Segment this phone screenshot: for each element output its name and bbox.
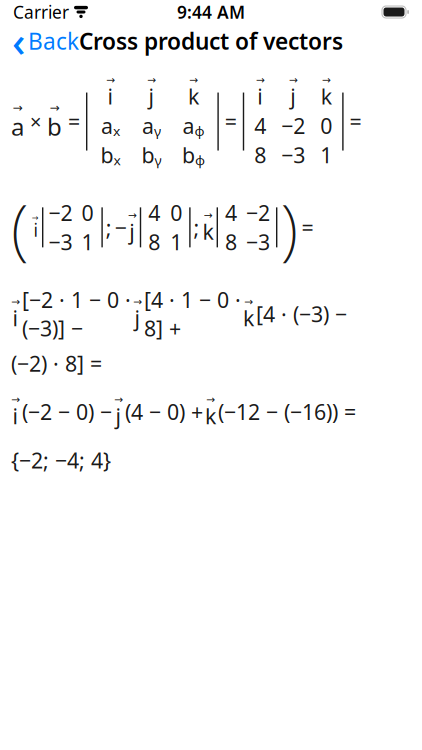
staticText: −2: [281, 111, 305, 140]
staticText: =: [301, 213, 313, 241]
staticText: [−2 · 1 − 0 · (−3)] −: [22, 286, 131, 342]
staticText: →: [322, 74, 331, 86]
staticText: (−2 − 0) −: [22, 398, 112, 426]
staticText: Carrier: [13, 0, 69, 23]
staticText: 9:44 AM: [177, 0, 245, 23]
staticText: i: [12, 304, 18, 332]
staticText: 1: [320, 141, 332, 169]
staticText: k: [203, 217, 214, 246]
staticText: →: [244, 296, 253, 308]
staticText: ‹: [12, 14, 25, 68]
staticText: −2: [246, 198, 270, 227]
staticText: Cross product of vectors: [79, 26, 343, 56]
staticText: →: [11, 296, 20, 308]
staticText: k: [243, 304, 254, 332]
staticText: 0: [170, 198, 182, 227]
staticText: aₓ: [101, 111, 120, 140]
staticText: 1: [81, 228, 93, 256]
staticText: (: [11, 183, 29, 272]
staticText: →: [12, 101, 22, 114]
staticText: j: [148, 82, 154, 110]
button[interactable]: ‹: [0, 11, 89, 71]
staticText: j: [134, 304, 140, 332]
staticText: →: [11, 394, 20, 406]
staticText: a: [11, 110, 24, 142]
staticText: bₓ: [100, 141, 120, 169]
staticText: (−12 − (−16)) =: [218, 398, 356, 426]
staticText: [4 · (−3) −: [256, 300, 347, 328]
staticText: 4: [225, 198, 237, 227]
staticText: j: [115, 402, 121, 430]
staticText: ×: [30, 108, 41, 135]
staticText: →: [147, 74, 156, 86]
staticText: =: [350, 107, 362, 136]
staticText: →: [289, 74, 298, 86]
staticText: =: [68, 107, 80, 136]
staticText: ): [280, 183, 298, 272]
staticText: −3: [281, 141, 305, 169]
staticText: =: [225, 107, 237, 136]
staticText: j: [129, 217, 135, 246]
staticText: k: [188, 82, 199, 110]
staticText: →: [106, 74, 115, 86]
staticText: k: [205, 402, 216, 430]
staticText: j: [290, 82, 296, 110]
staticText: ;: [106, 213, 112, 241]
staticText: −2: [48, 198, 72, 227]
staticText: {−2; −4; 4}: [11, 446, 111, 474]
staticText: →: [189, 74, 198, 86]
staticText: bᵧ: [141, 141, 161, 169]
staticText: 4: [148, 198, 160, 227]
staticText: aᵧ: [142, 111, 161, 140]
staticText: →: [32, 213, 39, 222]
staticText: 8: [254, 141, 266, 169]
staticText: b: [47, 110, 62, 142]
staticText: i: [107, 82, 113, 110]
staticText: 4: [254, 111, 266, 140]
staticText: 1: [170, 228, 182, 256]
staticText: →: [128, 209, 137, 221]
staticText: bᵩ: [182, 141, 205, 169]
staticText: 8: [225, 228, 237, 256]
staticText: →: [206, 394, 215, 406]
staticText: →: [114, 394, 123, 406]
staticText: Back: [28, 26, 79, 56]
staticText: −3: [48, 228, 72, 256]
staticText: −3: [246, 228, 270, 256]
staticText: 8: [148, 228, 160, 256]
staticText: ;: [194, 213, 200, 241]
staticText: i: [257, 82, 263, 110]
staticText: i: [12, 402, 18, 430]
staticText: −: [115, 213, 127, 241]
staticText: aᵩ: [182, 111, 204, 140]
staticText: →: [133, 296, 142, 308]
staticText: [4 · 1 − 0 · 8] +: [144, 286, 241, 342]
staticText: 0: [320, 111, 332, 140]
staticText: →: [256, 74, 265, 86]
staticText: (4 − 0) +: [125, 398, 203, 426]
staticText: →: [49, 101, 59, 114]
staticText: i: [33, 218, 37, 241]
staticText: →: [204, 209, 213, 221]
staticText: k: [321, 82, 332, 110]
staticText: 0: [81, 198, 93, 227]
staticText: (−2) · 8] =: [11, 349, 102, 378]
